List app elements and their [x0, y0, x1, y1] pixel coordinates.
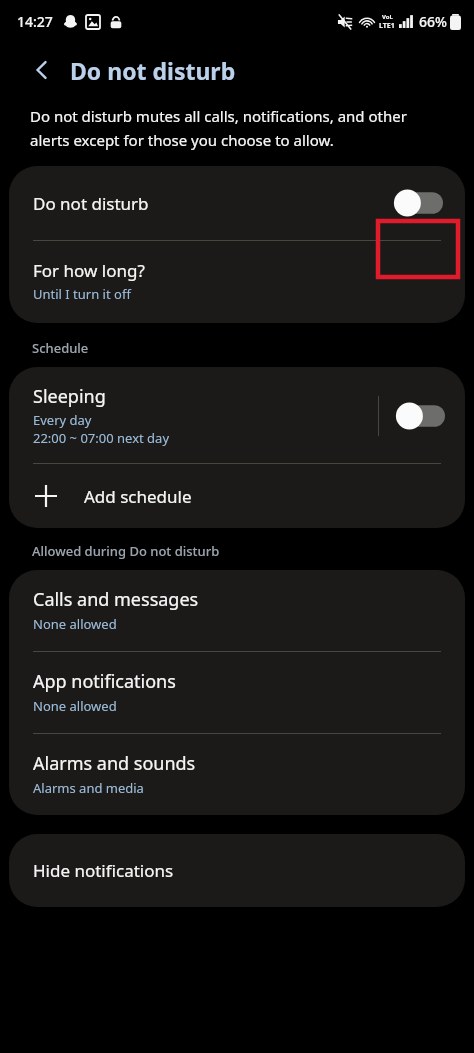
staticText: 14:27	[17, 12, 53, 31]
button[interactable]: Do not disturb	[9, 166, 465, 240]
staticText: Calls and messages	[33, 587, 199, 612]
staticText: Do not disturb	[70, 55, 236, 86]
staticText: Until I turn it off	[33, 285, 131, 303]
button[interactable]: Calls and messages	[9, 570, 465, 651]
staticText: Sleeping	[33, 384, 106, 409]
staticText: Alarms and sounds	[33, 751, 196, 776]
staticText: VoL	[382, 13, 393, 21]
button[interactable]: For how long?	[9, 241, 465, 323]
staticText: 66%	[419, 12, 447, 31]
staticText: Add schedule	[84, 485, 192, 508]
button[interactable]: Toggle	[395, 401, 445, 431]
staticText: Schedule	[32, 339, 89, 357]
staticText: For how long?	[33, 259, 145, 282]
staticText: None allowed	[33, 697, 117, 715]
staticText: Do not disturb	[33, 192, 149, 215]
staticText: Alarms and media	[33, 779, 144, 797]
button[interactable]: Sleeping	[9, 367, 465, 463]
staticText: None allowed	[33, 615, 117, 633]
staticText: Do not disturb mutes all calls, notifica…	[30, 106, 450, 150]
button[interactable]: Alarms and sounds	[9, 734, 465, 815]
staticText: Allowed during Do not disturb	[32, 542, 220, 560]
staticText: LTE1	[379, 21, 395, 31]
button[interactable]: Add schedule	[9, 464, 465, 528]
staticText: 22:00 ~ 07:00 next day	[33, 429, 170, 447]
staticText: Every day	[33, 411, 92, 429]
button[interactable]: Back	[22, 50, 62, 90]
staticText: Hide notifications	[33, 859, 174, 882]
staticText: App notifications	[33, 669, 176, 694]
button[interactable]: App notifications	[9, 652, 465, 733]
button[interactable]: Toggle	[393, 188, 443, 218]
button[interactable]: Hide notifications	[9, 834, 465, 907]
